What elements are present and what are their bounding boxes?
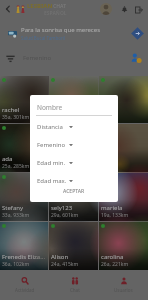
button[interactable]: Usuarios [99,270,148,300]
button[interactable]: Distancia [30,123,118,131]
button[interactable] [99,76,148,123]
staticText: mariela [101,204,123,212]
button[interactable]: Frenedis Eliza... [0,222,48,270]
button[interactable]: sely123 [49,173,98,221]
staticText: Para la sonrisa que mereces [21,26,101,34]
button[interactable]: rachel [0,76,48,123]
staticText: LESBIAN [27,2,53,10]
staticText: 36a, 102km [2,261,30,268]
button[interactable]: Stefany [0,173,48,221]
staticText: 33a, 933km [2,212,30,219]
staticText: Femenino [23,54,52,62]
staticText: rachel [2,106,20,114]
staticText: Actividad [15,287,35,293]
button[interactable]: Chat [50,270,99,300]
staticText: Chat [70,287,80,293]
button[interactable]: Edad max. [30,177,118,185]
button[interactable]: Filter [3,51,17,65]
staticText: 35a, 301km [2,114,30,121]
staticText: Edad max. [37,177,67,185]
button[interactable]: Notifications [119,4,130,15]
button[interactable]: Femenino [30,141,118,149]
button[interactable]: mariela [99,173,148,221]
staticText: ESPAÑOL [44,10,67,17]
staticText: sely123 [51,204,73,212]
button[interactable]: Log out [133,4,144,15]
staticText: 26a, 221km [101,261,129,268]
staticText: Nombre [37,103,63,112]
staticText: carolina [101,253,124,261]
button[interactable]: Back [2,3,14,15]
button[interactable]: ada [0,124,48,172]
staticText: Usuarios [114,287,133,293]
staticText: 19a, 133km [101,212,129,219]
staticText: Edad min. [37,159,66,167]
button[interactable]: carolina [99,222,148,270]
button[interactable]: Open advertisement [130,26,144,40]
staticText: ada [2,155,13,163]
button[interactable]: ACEPTAR [60,186,88,197]
staticText: Frenedis Eliza... [2,253,46,261]
button[interactable] [99,124,148,172]
staticText: ACEPTAR [63,188,85,195]
button[interactable] [49,124,98,172]
staticText: 25a, 285km [2,163,30,170]
staticText: CHAT [53,3,67,10]
staticText: Salud Bucal Tamboril [21,35,66,41]
staticText: Femenino [37,141,66,149]
button[interactable]: Edad min. [30,159,118,167]
button[interactable]: Alison [49,222,98,270]
button[interactable]: Actividad [0,270,50,300]
staticText: 29a, 601km [51,212,79,219]
staticText: 24a, 415km [51,261,79,268]
staticText: Alison [51,253,69,261]
button[interactable] [49,76,98,123]
staticText: Distancia [37,123,63,131]
staticText: Stefany [2,204,24,212]
button[interactable]: Profile [100,3,112,15]
